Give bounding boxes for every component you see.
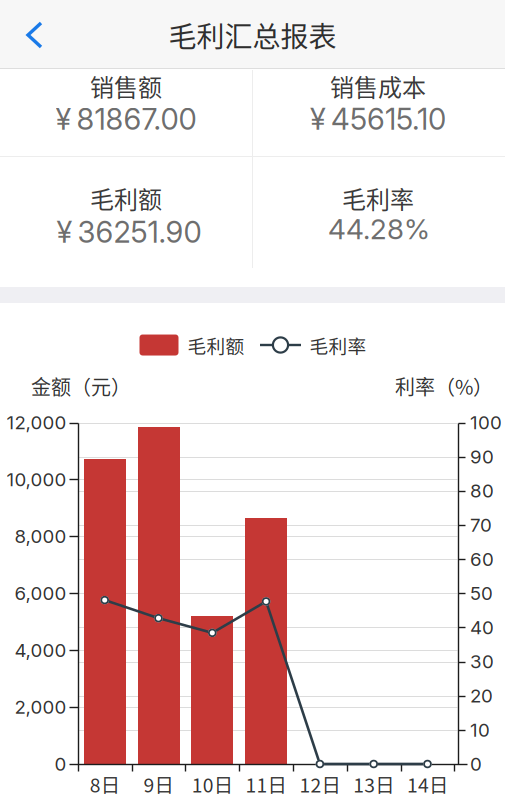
staticText: 80: [470, 479, 494, 502]
staticText: 60: [470, 548, 494, 570]
staticText: 6,000: [14, 582, 66, 605]
staticText: 12日: [299, 770, 340, 798]
staticText: 90: [470, 445, 494, 468]
staticText: 14日: [407, 770, 448, 798]
staticText: 30: [470, 650, 494, 673]
staticText: 44.28%: [328, 212, 430, 246]
staticText: 10: [470, 719, 490, 741]
staticText: ¥ 36251.90: [56, 214, 201, 250]
staticText: 100: [470, 411, 502, 434]
staticText: 销售额: [90, 69, 162, 103]
staticText: ¥ 45615.10: [310, 101, 446, 137]
staticText: 50: [470, 582, 493, 605]
staticText: 金额（元）: [31, 371, 131, 400]
staticText: 9日: [143, 770, 173, 798]
staticText: 0: [470, 753, 482, 775]
staticText: 70: [470, 514, 492, 536]
staticText: 8,000: [14, 525, 66, 548]
staticText: 13日: [353, 770, 394, 798]
button[interactable]: Back: [8, 9, 60, 61]
staticText: 12,000: [6, 411, 66, 434]
staticText: 10日: [192, 770, 233, 798]
staticText: 毛利汇总报表: [168, 15, 336, 55]
staticText: 毛利率: [342, 181, 414, 215]
staticText: 利率（%）: [395, 371, 493, 400]
staticText: 销售成本: [330, 69, 426, 103]
staticText: 8日: [90, 770, 120, 798]
staticText: 40: [470, 616, 494, 639]
staticText: 毛利额: [187, 331, 244, 358]
staticText: 11日: [246, 770, 287, 798]
staticText: 2,000: [14, 696, 66, 718]
staticText: 10,000: [6, 468, 66, 491]
staticText: 0: [54, 753, 66, 775]
staticText: 毛利率: [309, 331, 366, 358]
staticText: 毛利额: [90, 181, 162, 215]
staticText: ¥ 81867.00: [55, 101, 196, 137]
staticText: 20: [470, 684, 493, 707]
staticText: 4,000: [14, 639, 66, 661]
